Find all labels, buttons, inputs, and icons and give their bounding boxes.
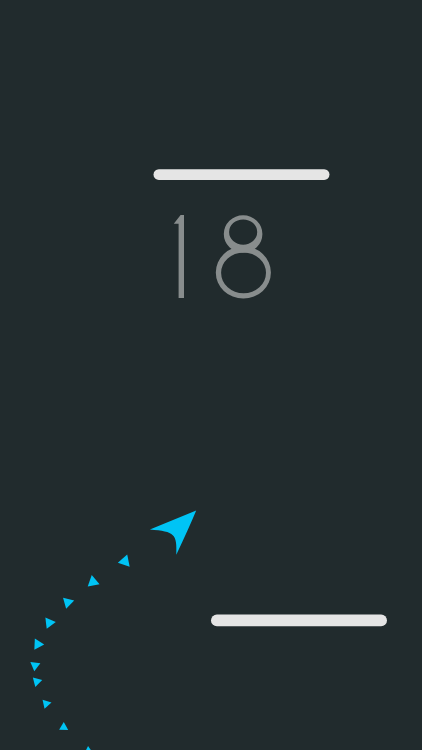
button[interactable]: Game board [0,0,422,750]
